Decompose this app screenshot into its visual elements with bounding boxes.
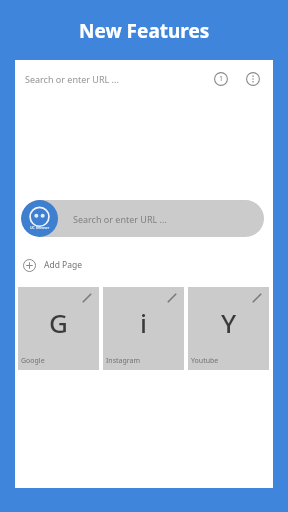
button[interactable]: Search or enter URL ...	[25, 73, 119, 85]
staticText: UC Browser	[30, 225, 50, 230]
button[interactable]: More options	[243, 69, 263, 89]
staticText: 1	[219, 74, 224, 84]
staticText: Youtube	[191, 356, 219, 366]
button[interactable]: Y	[188, 287, 269, 370]
button[interactable]: Edit Instagram	[166, 292, 178, 304]
staticText: G	[49, 305, 68, 340]
staticText: Y	[221, 305, 237, 340]
button[interactable]: i	[103, 287, 184, 370]
staticText: Search or enter URL ...	[73, 213, 167, 225]
staticText: i	[140, 305, 148, 340]
staticText: Add Page	[44, 259, 83, 271]
button[interactable]: Edit Youtube	[251, 292, 263, 304]
button[interactable]: UC Browser	[21, 200, 264, 237]
staticText: Instagram	[106, 356, 141, 366]
staticText: New Features	[79, 18, 210, 44]
staticText: Search or enter URL ...	[25, 73, 119, 85]
button[interactable]: Tabs	[211, 69, 231, 89]
button[interactable]: Add Page	[21, 253, 83, 277]
staticText: Google	[21, 356, 45, 366]
button[interactable]: G	[18, 287, 99, 370]
button[interactable]: Edit Google	[81, 292, 93, 304]
